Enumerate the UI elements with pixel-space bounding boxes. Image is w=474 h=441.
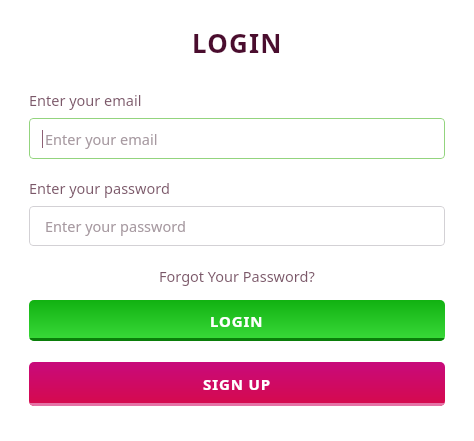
- staticText: Enter your email: [45, 129, 158, 149]
- staticText: Forgot Your Password?: [159, 266, 315, 286]
- staticText: Enter your password: [45, 216, 186, 236]
- staticText: Enter your password: [29, 178, 170, 198]
- staticText: LOGIN: [210, 311, 264, 331]
- button[interactable]: SIGN UP: [29, 362, 445, 406]
- button[interactable]: Enter your email: [29, 118, 445, 159]
- button[interactable]: Enter your password: [29, 206, 445, 246]
- staticText: LOGIN: [192, 25, 283, 60]
- button[interactable]: LOGIN: [29, 300, 445, 341]
- staticText: SIGN UP: [203, 374, 272, 394]
- button[interactable]: Forgot Your Password?: [153, 263, 321, 289]
- staticText: Enter your email: [29, 90, 142, 110]
